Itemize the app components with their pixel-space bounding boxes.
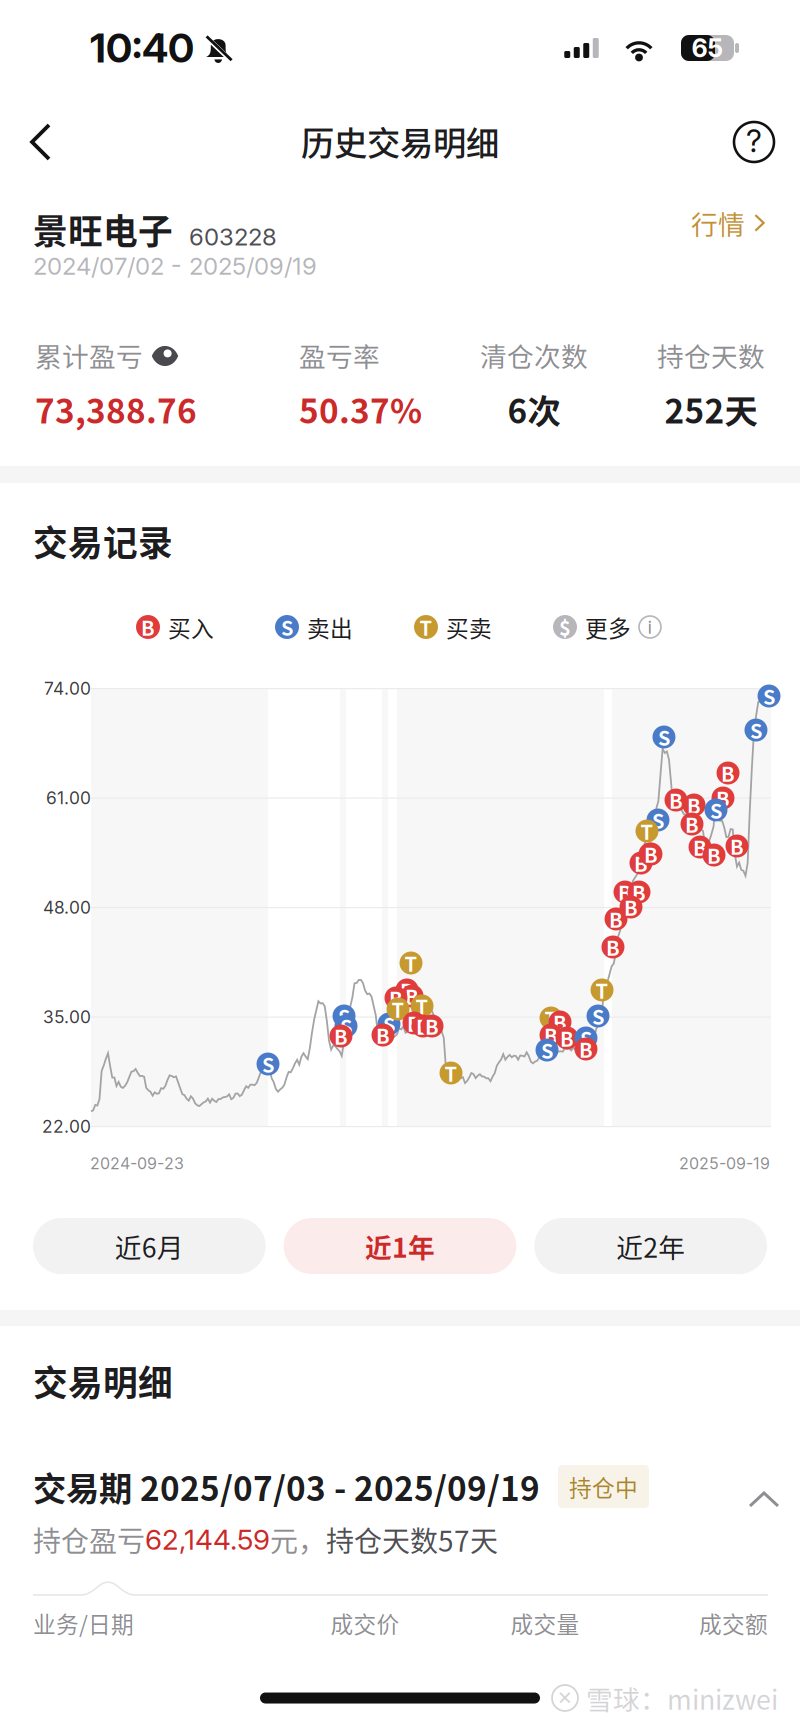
- staticText: B: [618, 877, 632, 906]
- staticText: B: [389, 983, 403, 1012]
- staticText: 清仓次数: [480, 336, 588, 374]
- staticText: B: [606, 932, 620, 961]
- button[interactable]: 近2年: [534, 1218, 767, 1274]
- staticText: T: [419, 612, 432, 641]
- staticText: B: [407, 1008, 421, 1037]
- staticText: B: [553, 1007, 567, 1036]
- button[interactable]: 行情: [671, 194, 770, 254]
- button[interactable]: 交易期 2025/07/03 - 2025/09/19: [0, 1406, 800, 1559]
- staticText: S: [340, 1011, 352, 1040]
- staticText: T: [544, 1003, 557, 1032]
- staticText: 累计盈亏: [35, 336, 143, 374]
- staticText: S: [541, 1035, 553, 1064]
- staticText: 持仓盈亏: [33, 1519, 145, 1560]
- staticText: 交易明细: [33, 1356, 173, 1406]
- staticText: B: [141, 612, 155, 641]
- staticText: 更多: [585, 611, 631, 643]
- staticText: S: [262, 1049, 274, 1078]
- staticText: B: [721, 758, 735, 787]
- staticText: B: [687, 790, 701, 819]
- staticText: 买卖: [446, 611, 492, 643]
- staticText: B: [334, 1022, 348, 1051]
- staticText: i: [647, 616, 652, 638]
- staticText: 元，: [270, 1519, 326, 1560]
- staticText: 近2年: [616, 1227, 685, 1265]
- staticText: S: [652, 805, 664, 834]
- staticText: 48.00: [43, 897, 91, 918]
- staticText: 历史交易明细: [301, 117, 499, 165]
- staticText: T: [404, 948, 417, 977]
- button[interactable]: 近6月: [33, 1218, 266, 1274]
- staticText: B: [376, 1021, 390, 1050]
- staticText: 近6月: [115, 1227, 184, 1265]
- staticText: 22.00: [42, 1116, 91, 1137]
- staticText: 2024/07/02 - 2025/09/19: [33, 251, 317, 280]
- staticText: T: [595, 975, 608, 1004]
- staticText: B: [416, 1011, 430, 1040]
- staticText: 近1年: [365, 1227, 435, 1265]
- staticText: B: [632, 877, 646, 906]
- staticText: 2025-09-19: [679, 1154, 770, 1173]
- staticText: B: [544, 1021, 558, 1050]
- staticText: 交易期 2025/07/03 - 2025/09/19: [33, 1462, 540, 1511]
- staticText: 雪球：minizwei: [586, 1679, 778, 1717]
- staticText: $: [559, 612, 571, 641]
- button[interactable]: Help: [712, 106, 800, 178]
- staticText: 603228: [189, 222, 277, 251]
- staticText: 行情: [691, 204, 745, 242]
- staticText: S: [710, 795, 722, 824]
- staticText: B: [400, 975, 414, 1004]
- staticText: 252天: [664, 385, 757, 433]
- staticText: ✕: [557, 1687, 573, 1709]
- staticText: S: [338, 1001, 350, 1030]
- staticText: B: [669, 785, 683, 814]
- staticText: 62,144.59: [145, 1523, 270, 1556]
- button[interactable]: Back: [0, 106, 77, 178]
- staticText: 成交价: [330, 1607, 399, 1639]
- staticText: 成交量: [510, 1607, 579, 1639]
- staticText: 10:40: [90, 24, 194, 72]
- staticText: 持仓天数: [657, 336, 765, 374]
- staticText: B: [624, 892, 638, 921]
- staticText: 2024-09-23: [90, 1154, 184, 1173]
- staticText: 卖出: [307, 611, 353, 643]
- staticText: S: [580, 1023, 592, 1052]
- staticText: S: [658, 722, 670, 751]
- staticText: B: [609, 904, 623, 933]
- staticText: S: [592, 1001, 604, 1030]
- staticText: B: [730, 831, 744, 860]
- staticText: S: [763, 681, 775, 710]
- staticText: S: [750, 716, 762, 745]
- staticText: 持仓中: [569, 1470, 638, 1503]
- staticText: B: [643, 839, 657, 868]
- staticText: B: [634, 849, 648, 878]
- staticText: B: [685, 810, 699, 839]
- staticText: B: [707, 840, 721, 869]
- staticText: T: [415, 991, 428, 1020]
- staticText: 35.00: [43, 1006, 91, 1027]
- staticText: 成交额: [699, 1607, 768, 1639]
- staticText: B: [644, 839, 658, 868]
- staticText: 73,388.76: [35, 385, 197, 433]
- staticText: 65: [691, 33, 723, 63]
- staticText: 景旺电子: [33, 204, 173, 254]
- staticText: T: [391, 994, 404, 1023]
- staticText: 57天: [438, 1519, 498, 1560]
- staticText: B: [405, 982, 419, 1011]
- staticText: 买入: [168, 611, 214, 643]
- staticText: B: [425, 1011, 439, 1040]
- staticText: 盈亏率: [299, 336, 380, 374]
- staticText: B: [579, 1034, 593, 1063]
- button[interactable]: 近1年: [284, 1218, 516, 1274]
- staticText: 持仓天数: [326, 1519, 438, 1560]
- staticText: 50.37%: [299, 385, 422, 433]
- staticText: 交易记录: [33, 516, 173, 566]
- staticText: 业务/日期: [33, 1607, 134, 1639]
- staticText: T: [444, 1058, 457, 1087]
- staticText: 61.00: [46, 787, 91, 808]
- staticText: 74.00: [44, 678, 91, 699]
- staticText: 6次: [507, 385, 560, 433]
- staticText: B: [560, 1023, 574, 1052]
- staticText: S: [281, 612, 293, 641]
- staticText: ?: [746, 122, 762, 159]
